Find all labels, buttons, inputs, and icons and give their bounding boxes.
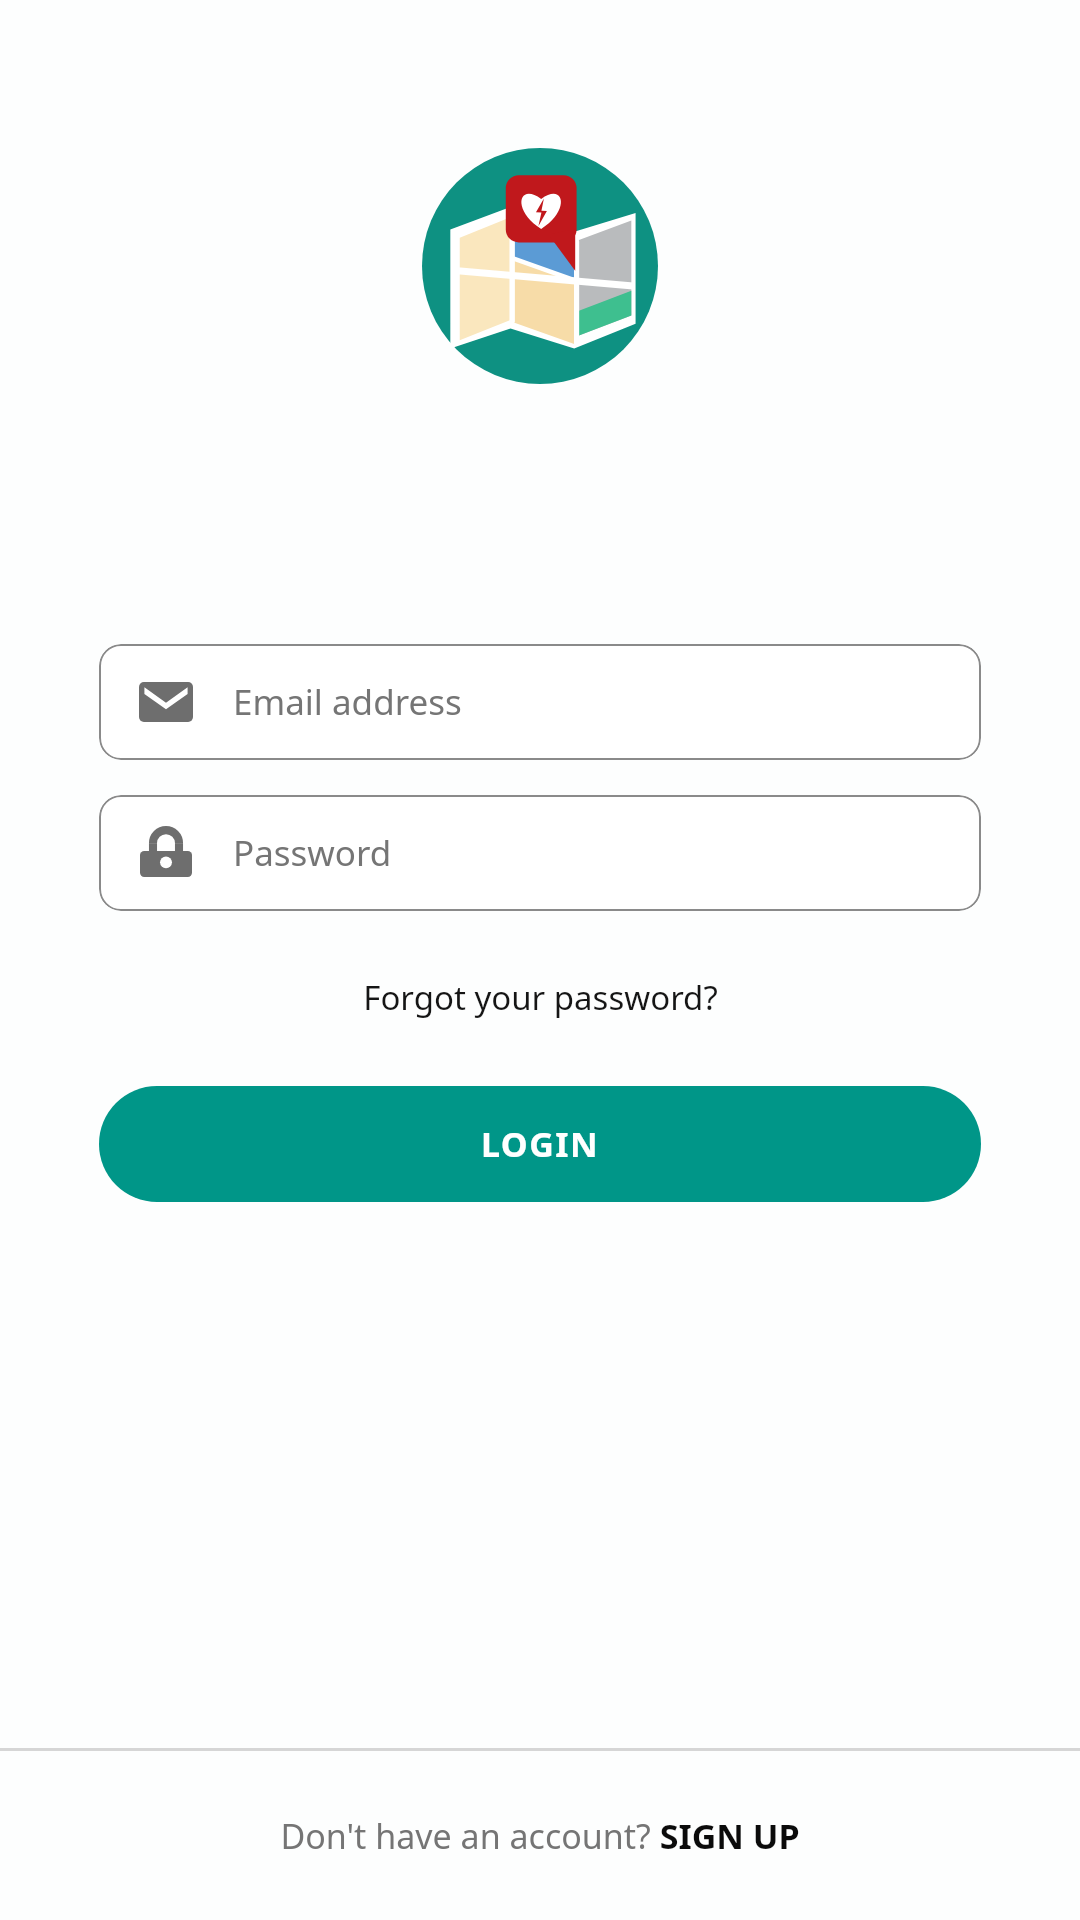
button[interactable]: LOGIN — [99, 1086, 981, 1202]
other: App logo — [422, 148, 658, 384]
staticText: Don't have an account? SIGN UP — [280, 1813, 800, 1859]
staticText: Password — [233, 829, 392, 877]
staticText: Forgot your password? — [363, 975, 718, 1020]
button[interactable]: Password — [99, 795, 981, 911]
other: Password — [140, 827, 192, 879]
button[interactable]: Don't have an account? SIGN UP — [0, 1751, 1080, 1920]
other: Email — [139, 675, 193, 729]
staticText: Email address — [233, 678, 462, 726]
button[interactable]: Email — [99, 644, 981, 760]
staticText: LOGIN — [481, 1121, 600, 1167]
button[interactable]: Forgot your password? — [0, 959, 1080, 1036]
